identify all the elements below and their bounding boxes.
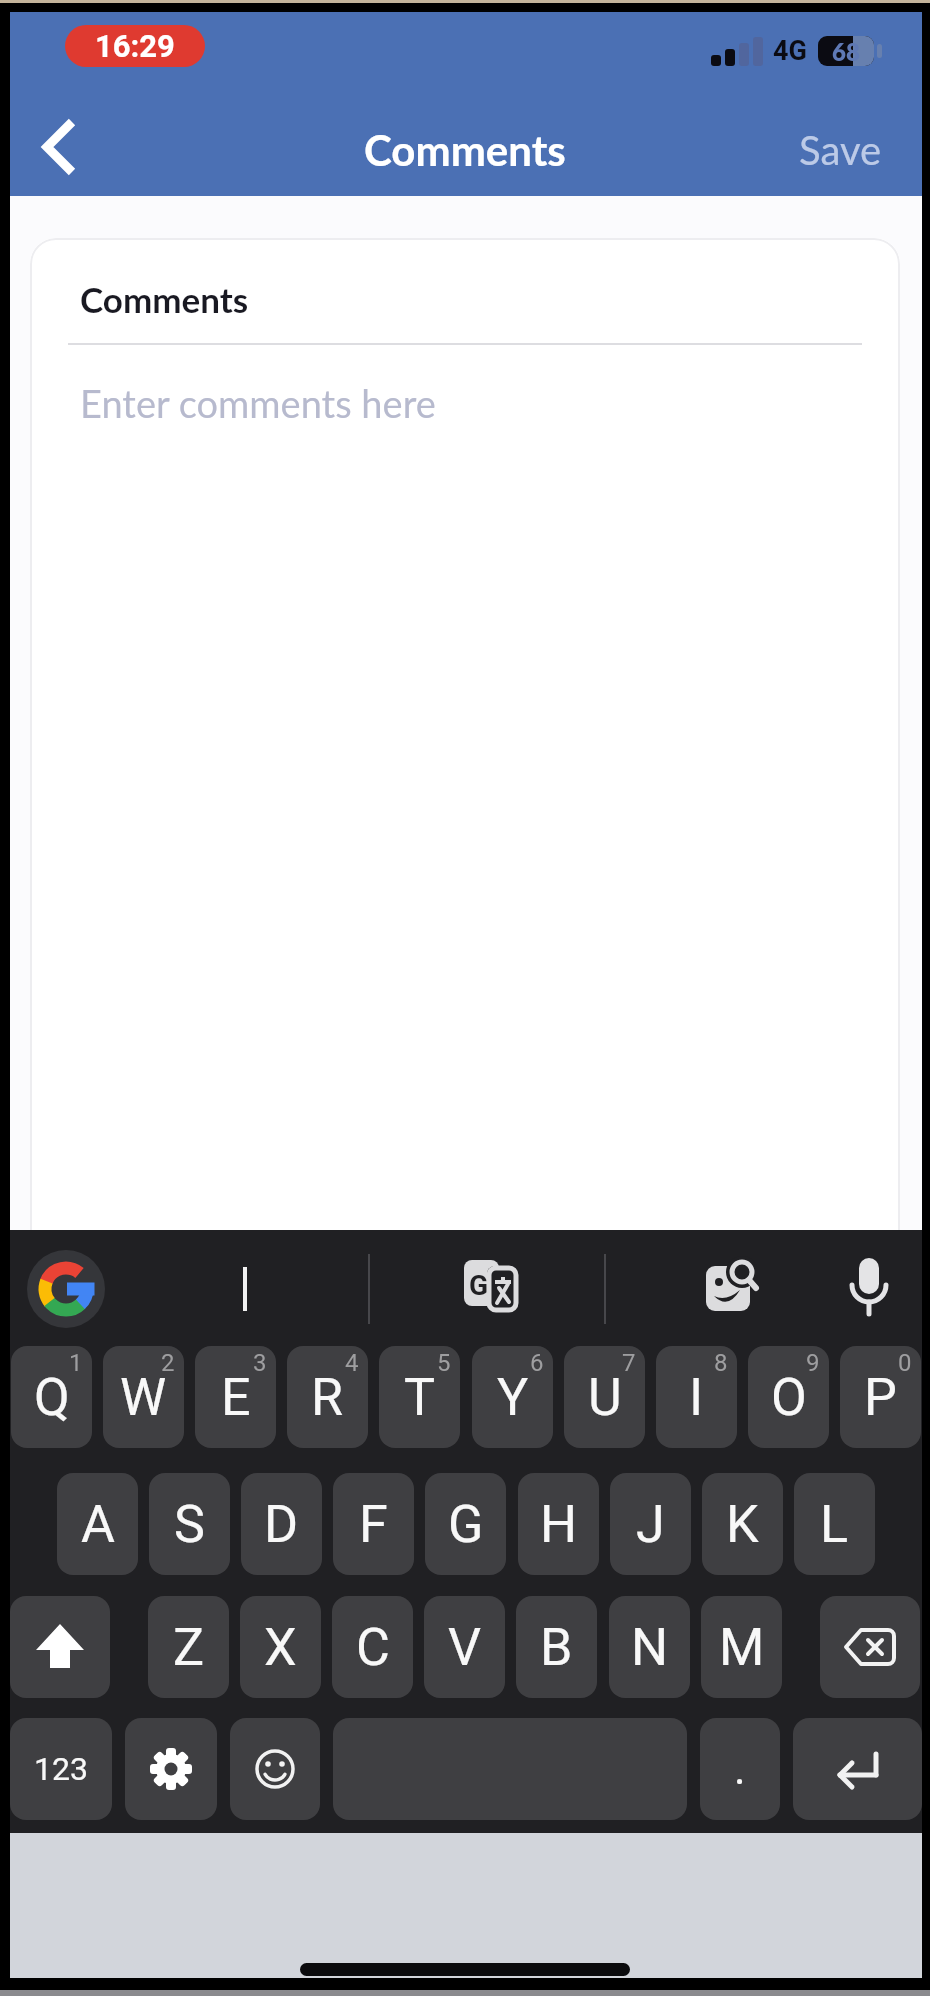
button[interactable] xyxy=(820,1596,920,1698)
staticText: I xyxy=(689,1367,704,1428)
staticText: 4 xyxy=(345,1349,359,1377)
staticText: X xyxy=(264,1617,297,1678)
staticText: 2 xyxy=(161,1349,175,1377)
staticText: Enter comments here xyxy=(80,380,436,426)
staticText: W xyxy=(120,1367,167,1428)
button[interactable]: 123 xyxy=(10,1718,112,1820)
staticText: G xyxy=(448,1494,484,1555)
button[interactable] xyxy=(793,1718,922,1820)
button[interactable]: G xyxy=(425,1473,506,1575)
button[interactable]: T xyxy=(379,1346,460,1448)
staticText: Comments xyxy=(80,278,249,320)
button[interactable]: C xyxy=(332,1596,413,1698)
staticText: D xyxy=(264,1494,299,1555)
button[interactable]: K xyxy=(702,1473,783,1575)
staticText: 5 xyxy=(437,1349,451,1377)
staticText: 0 xyxy=(898,1349,912,1377)
button[interactable]: N xyxy=(609,1596,690,1698)
button[interactable] xyxy=(28,110,92,186)
staticText: Q xyxy=(34,1367,70,1428)
staticText: 8 xyxy=(714,1349,728,1377)
button[interactable]: P xyxy=(840,1346,921,1448)
staticText: R xyxy=(311,1367,344,1428)
staticText: V xyxy=(448,1617,482,1678)
staticText: H xyxy=(540,1494,578,1555)
staticText: 16:29 xyxy=(95,28,175,64)
button[interactable]: . xyxy=(700,1718,780,1820)
button[interactable]: H xyxy=(518,1473,599,1575)
staticText: Save xyxy=(799,126,882,174)
button[interactable]: U xyxy=(564,1346,645,1448)
staticText: J xyxy=(636,1494,665,1555)
staticText: K xyxy=(726,1494,759,1555)
button[interactable]: Save xyxy=(770,122,882,178)
staticText: 4G xyxy=(773,35,807,67)
button[interactable] xyxy=(846,1256,892,1322)
staticText: Comments xyxy=(364,125,566,175)
button[interactable]: J xyxy=(610,1473,691,1575)
button[interactable]: R xyxy=(287,1346,368,1448)
button[interactable] xyxy=(704,1258,762,1318)
staticText: M xyxy=(719,1617,765,1678)
staticText: 9 xyxy=(806,1349,820,1377)
button[interactable]: M xyxy=(701,1596,782,1698)
button[interactable]: B xyxy=(516,1596,597,1698)
staticText: C xyxy=(356,1617,390,1678)
staticText: Y xyxy=(497,1367,529,1428)
staticText: U xyxy=(588,1367,622,1428)
button[interactable]: W xyxy=(103,1346,184,1448)
button[interactable]: 16:29 xyxy=(65,25,205,67)
staticText: B xyxy=(540,1617,573,1678)
staticText: E xyxy=(221,1367,251,1428)
button[interactable]: V xyxy=(424,1596,505,1698)
staticText: S xyxy=(174,1494,205,1555)
staticText: L xyxy=(820,1494,849,1555)
staticText: 7 xyxy=(622,1349,636,1377)
button[interactable]: E xyxy=(195,1346,276,1448)
staticText: 6 xyxy=(530,1349,544,1377)
button[interactable]: D xyxy=(241,1473,322,1575)
button[interactable] xyxy=(27,1250,105,1328)
staticText: G xyxy=(469,1269,489,1302)
button[interactable]: S xyxy=(149,1473,230,1575)
staticText: P xyxy=(864,1367,897,1428)
button[interactable]: Z xyxy=(148,1596,229,1698)
staticText: 123 xyxy=(34,1750,88,1788)
button[interactable] xyxy=(10,1596,110,1698)
button[interactable]: G xyxy=(463,1258,521,1316)
staticText: T xyxy=(404,1367,436,1428)
staticText: A xyxy=(81,1494,115,1555)
button[interactable] xyxy=(230,1718,320,1820)
staticText: 1 xyxy=(69,1349,83,1377)
staticText: Z xyxy=(173,1617,205,1678)
staticText: . xyxy=(734,1743,746,1795)
button[interactable]: L xyxy=(794,1473,875,1575)
button[interactable]: Q xyxy=(11,1346,92,1448)
button[interactable]: Y xyxy=(472,1346,553,1448)
button[interactable]: A xyxy=(57,1473,138,1575)
button[interactable]: F xyxy=(333,1473,414,1575)
staticText: 3 xyxy=(253,1349,267,1377)
staticText: 68 xyxy=(832,37,860,66)
staticText: O xyxy=(771,1367,807,1428)
staticText: F xyxy=(359,1494,388,1555)
button[interactable]: O xyxy=(748,1346,829,1448)
button[interactable]: I xyxy=(656,1346,737,1448)
button[interactable] xyxy=(125,1718,217,1820)
button[interactable]: X xyxy=(240,1596,321,1698)
staticText: N xyxy=(631,1617,669,1678)
